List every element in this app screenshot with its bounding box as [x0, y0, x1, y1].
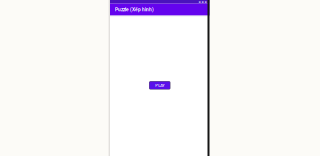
- staticText: ▪ ▪ ▪: [198, 0, 206, 4]
- staticText: Puzzle (Xếp hình): [115, 7, 154, 12]
- button[interactable]: PLAY: [149, 81, 170, 89]
- staticText: PLAY: [155, 83, 164, 88]
